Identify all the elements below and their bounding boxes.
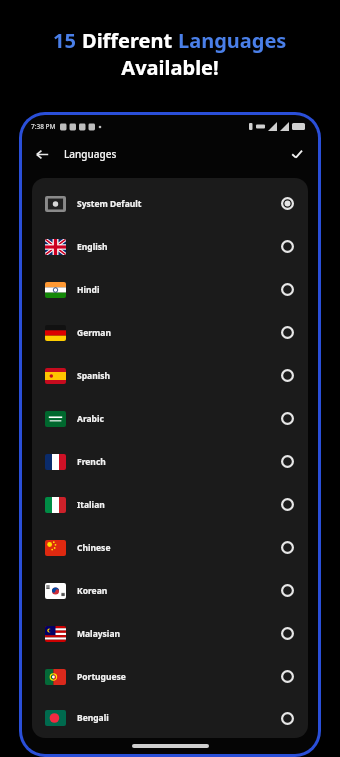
staticText: Malaysian (77, 628, 121, 640)
button[interactable]: Back (28, 140, 56, 168)
staticText: Arabic (77, 413, 104, 425)
staticText: Spanish (77, 370, 111, 382)
button[interactable]: Bengali (32, 698, 308, 738)
staticText: French (77, 456, 106, 468)
staticText: Portuguese (77, 671, 126, 683)
staticText: Available! (121, 54, 219, 81)
staticText: Hindi (77, 284, 100, 296)
staticText: 7:38 PM (31, 122, 56, 131)
button[interactable]: German (32, 311, 308, 354)
button[interactable]: English (32, 225, 308, 268)
button[interactable]: System Default (32, 182, 308, 225)
button[interactable]: Italian (32, 483, 308, 526)
staticText: Different (82, 27, 178, 54)
button[interactable]: Portuguese (32, 655, 308, 698)
button[interactable]: Spanish (32, 354, 308, 397)
staticText: System Default (77, 198, 142, 210)
staticText: 15 (53, 27, 82, 54)
staticText: Languages (178, 27, 287, 54)
button[interactable]: French (32, 440, 308, 483)
staticText: Korean (77, 585, 108, 597)
button[interactable]: Korean (32, 569, 308, 612)
staticText: Chinese (77, 542, 111, 554)
staticText: Languages (64, 147, 117, 161)
staticText: English (77, 241, 108, 253)
staticText: Italian (77, 499, 105, 511)
button[interactable]: Chinese (32, 526, 308, 569)
button[interactable]: Confirm (283, 140, 311, 168)
button[interactable]: Arabic (32, 397, 308, 440)
staticText: Bengali (77, 712, 109, 724)
button[interactable]: Malaysian (32, 612, 308, 655)
button[interactable]: Hindi (32, 268, 308, 311)
staticText: German (77, 327, 111, 339)
